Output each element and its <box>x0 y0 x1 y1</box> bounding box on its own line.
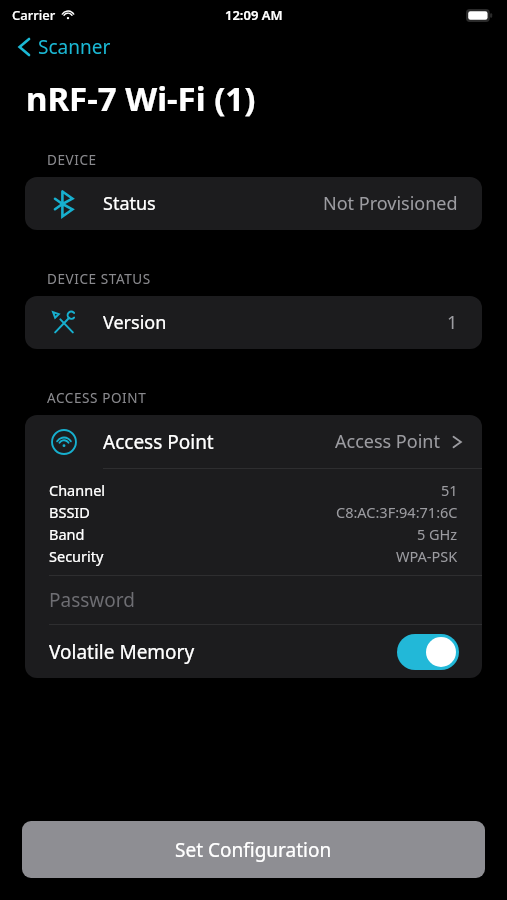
other: Version <box>51 310 77 336</box>
staticText: C8:AC:3F:94:71:6C <box>336 502 458 522</box>
staticText: BSSID <box>49 502 90 522</box>
button[interactable]: Version <box>25 296 482 349</box>
other: Bluetooth <box>54 191 74 217</box>
staticText: 5 GHz <box>417 524 458 544</box>
staticText: 51 <box>441 480 458 500</box>
staticText: Status <box>103 191 156 216</box>
button[interactable]: Bluetooth <box>25 177 482 230</box>
staticText: WPA-PSK <box>396 546 458 566</box>
staticText: Channel <box>49 480 106 500</box>
staticText: nRF-7 Wi-Fi (1) <box>26 76 256 121</box>
staticText: Set Configuration <box>175 837 332 863</box>
other: Access Point <box>51 429 77 455</box>
staticText: Access Point <box>335 429 440 454</box>
button[interactable]: Set Configuration <box>22 821 485 878</box>
staticText: Not Provisioned <box>323 191 458 216</box>
staticText: 12:09 AM <box>225 6 283 24</box>
button[interactable]: Volatile Memory <box>25 625 482 678</box>
button[interactable]: Password <box>25 576 482 624</box>
staticText: Access Point <box>103 429 214 455</box>
button[interactable]: Volatile Memory toggle <box>397 634 459 670</box>
staticText: Scanner <box>38 34 111 60</box>
staticText: DEVICE STATUS <box>47 270 151 288</box>
staticText: Band <box>49 524 85 544</box>
staticText: Carrier <box>12 6 56 24</box>
staticText: Version <box>103 310 167 335</box>
button[interactable]: Scanner <box>12 30 117 64</box>
staticText: ACCESS POINT <box>47 389 147 407</box>
staticText: DEVICE <box>47 151 97 169</box>
staticText: Password <box>49 587 135 613</box>
staticText: Volatile Memory <box>49 639 195 665</box>
staticText: 1 <box>447 310 458 335</box>
button[interactable]: Access Point <box>25 415 482 468</box>
staticText: Security <box>49 546 104 566</box>
